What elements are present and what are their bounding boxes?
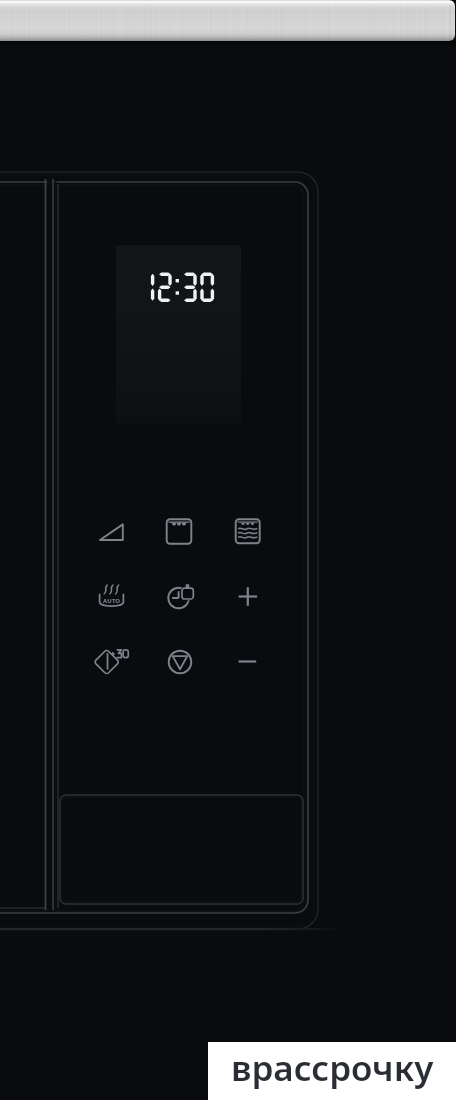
button[interactable]: Increase (221, 571, 273, 623)
button[interactable]: Power level (84, 509, 136, 561)
button[interactable]: в рассрочку (208, 1042, 460, 1100)
button[interactable]: Quick start plus 30 seconds (84, 635, 136, 687)
button[interactable]: Clock display 12:30 (116, 244, 242, 425)
button[interactable]: Decrease (221, 635, 273, 687)
button[interactable]: Stop (155, 635, 207, 687)
button[interactable]: Timer (155, 571, 207, 623)
staticText: врассрочку (231, 1044, 434, 1092)
button[interactable]: Auto cook (84, 571, 136, 623)
button[interactable]: Grill (155, 509, 207, 561)
staticText: AUTO (103, 597, 121, 605)
button[interactable]: Grill and convection (221, 509, 273, 561)
button[interactable]: Door handle (58, 795, 306, 906)
